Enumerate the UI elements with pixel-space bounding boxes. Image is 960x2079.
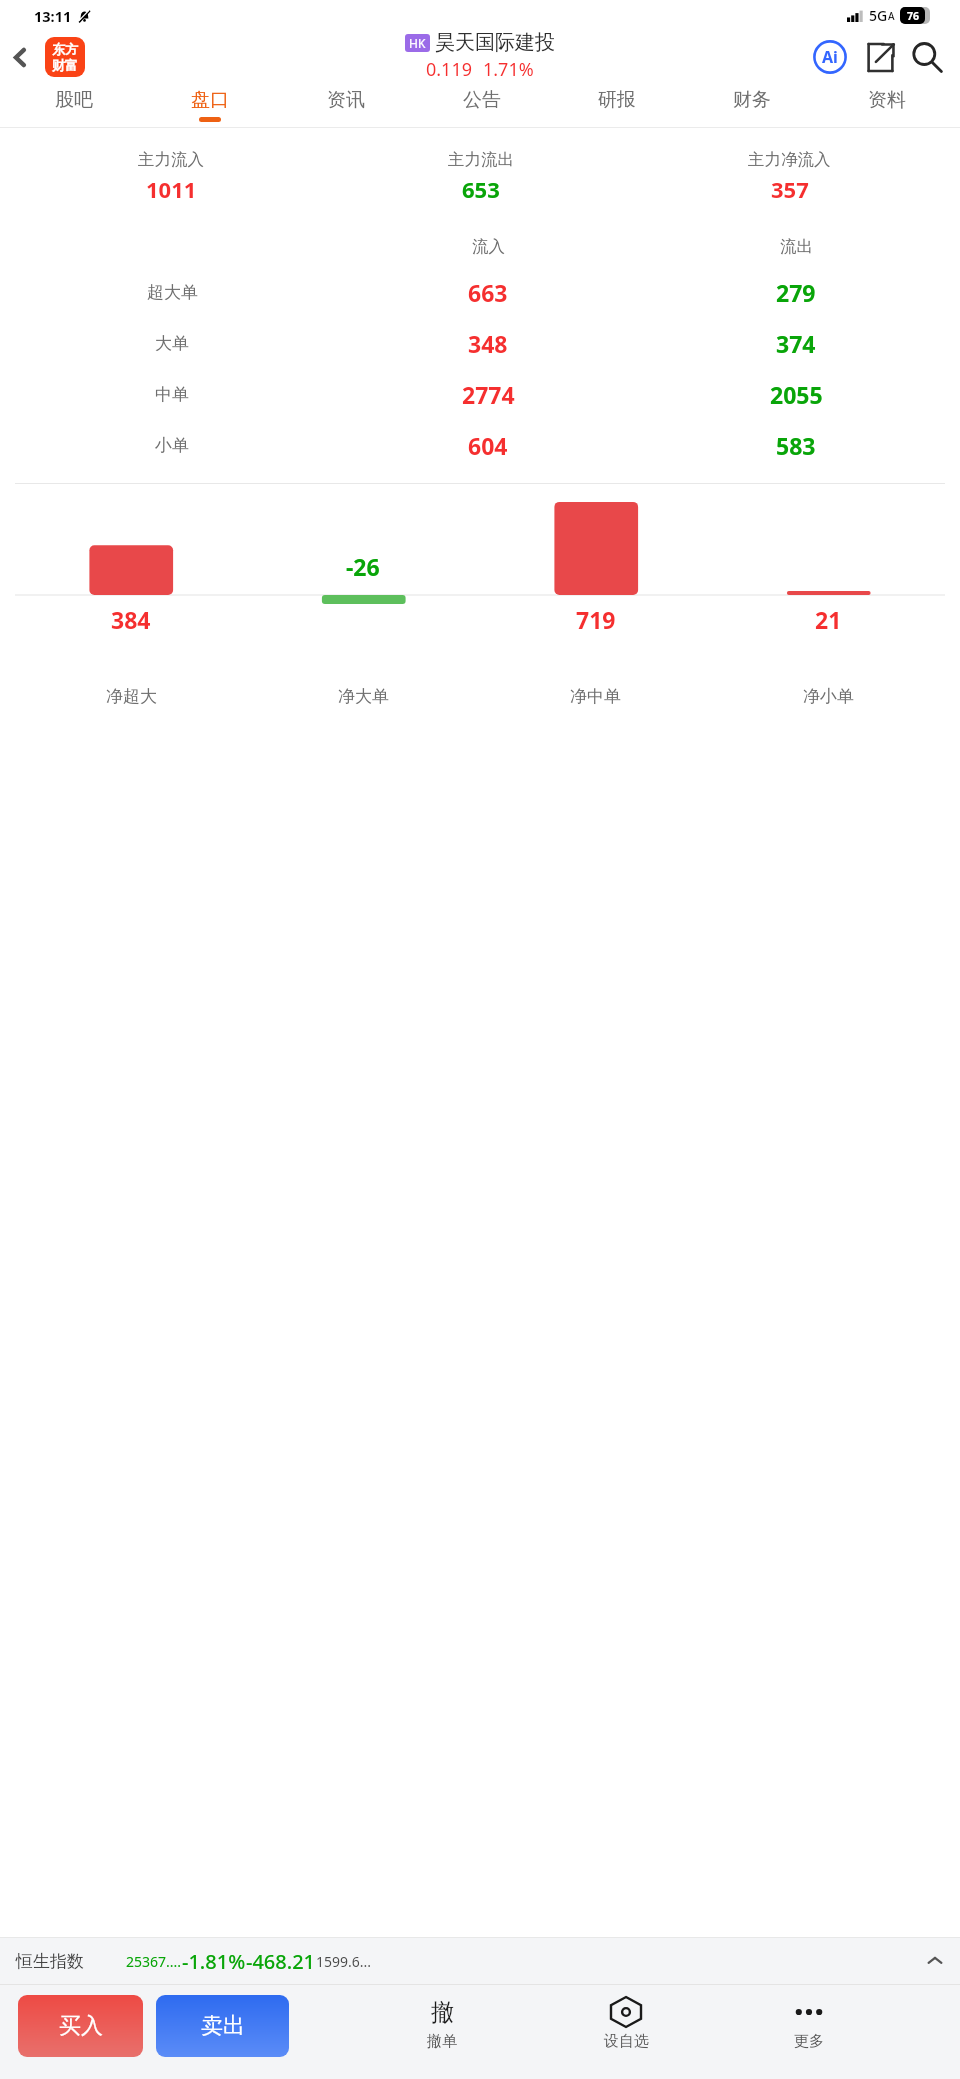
staticText: 净大单 (338, 686, 389, 707)
staticText: 279 (776, 277, 816, 308)
staticText: 资料 (868, 88, 906, 112)
button[interactable]: 买入 (18, 1995, 143, 2057)
staticText: 1599.6... (316, 1952, 372, 1971)
staticText: 更多 (794, 2032, 824, 2051)
button[interactable]: 资讯 (278, 83, 414, 127)
staticText: 研报 (598, 88, 636, 112)
staticText: Ai (822, 46, 838, 68)
button[interactable]: 更多 (768, 1995, 850, 2051)
staticText: 663 (468, 277, 508, 308)
staticText: 357 (771, 174, 809, 204)
staticText: 东方 (52, 41, 78, 57)
button[interactable]: Share (858, 35, 902, 79)
button[interactable]: 卖出 (156, 1995, 289, 2057)
staticText: 719 (576, 604, 616, 635)
staticText: 653 (462, 174, 500, 204)
staticText: 财务 (733, 88, 771, 112)
button[interactable]: 资料 (819, 83, 954, 127)
button[interactable]: 撤 (401, 1995, 483, 2051)
button[interactable]: Search (904, 34, 950, 80)
staticText: A (888, 9, 895, 23)
button[interactable]: HK (405, 30, 555, 82)
staticText: 5G (869, 6, 888, 25)
staticText: 主力净流入 (748, 149, 831, 170)
staticText: 25367.... (126, 1952, 182, 1971)
staticText: 1011 (146, 174, 197, 204)
staticText: 0.119 (426, 57, 473, 82)
staticText: 净超大 (106, 686, 157, 707)
staticText: 小单 (155, 435, 189, 456)
button[interactable]: 盘口 (142, 83, 278, 127)
staticText: 净小单 (803, 686, 854, 707)
button[interactable]: Back (0, 37, 40, 77)
staticText: -26 (346, 551, 380, 582)
staticText: 主力流入 (138, 149, 204, 170)
staticText: 348 (468, 328, 508, 359)
staticText: 昊天国际建投 (435, 30, 555, 55)
button[interactable]: 小单 (10, 420, 950, 471)
staticText: 资讯 (327, 88, 365, 112)
staticText: 1.71% (483, 57, 534, 82)
button[interactable]: 财务 (684, 83, 819, 127)
staticText: 财富 (52, 57, 78, 73)
staticText: 超大单 (147, 282, 198, 303)
staticText: -468.21 (246, 1948, 316, 1975)
staticText: 大单 (155, 333, 189, 354)
button[interactable]: 股吧 (6, 83, 142, 127)
staticText: HK (409, 35, 426, 51)
staticText: -1.81% (182, 1948, 246, 1975)
staticText: 13:11 (34, 6, 72, 26)
staticText: 流出 (780, 236, 813, 257)
staticText: 583 (776, 430, 816, 461)
staticText: 604 (468, 430, 508, 461)
staticText: 撤 (431, 1998, 454, 2027)
staticText: 76 (907, 9, 920, 23)
button[interactable]: 中单 (10, 369, 950, 420)
button[interactable]: 研报 (549, 83, 684, 127)
staticText: 撤单 (427, 2032, 457, 2051)
staticText: 2055 (770, 379, 823, 410)
staticText: 主力流出 (448, 149, 514, 170)
staticText: 盘口 (191, 88, 229, 112)
button[interactable]: 大单 (10, 318, 950, 369)
button[interactable]: 公告 (414, 83, 549, 127)
staticText: 384 (111, 604, 151, 635)
staticText: 净中单 (570, 686, 621, 707)
staticText: 股吧 (55, 88, 93, 112)
button[interactable]: AI assistant (808, 35, 852, 79)
staticText: 流入 (472, 236, 505, 257)
other: Expand (924, 1950, 946, 1972)
button[interactable]: 超大单 (10, 267, 950, 318)
staticText: 公告 (463, 88, 501, 112)
button[interactable]: 设自选 (585, 1995, 667, 2051)
button[interactable]: 恒生指数 (16, 1938, 946, 1984)
staticText: 374 (776, 328, 816, 359)
staticText: 中单 (155, 384, 189, 405)
button[interactable]: 东方财富 (45, 37, 85, 77)
button[interactable]: 主力流入 (16, 141, 944, 211)
staticText: 2774 (462, 379, 515, 410)
staticText: 买入 (59, 2012, 103, 2040)
staticText: 恒生指数 (16, 1951, 84, 1972)
staticText: 卖出 (201, 2012, 245, 2040)
staticText: 21 (815, 604, 842, 635)
staticText: 设自选 (604, 2032, 649, 2051)
